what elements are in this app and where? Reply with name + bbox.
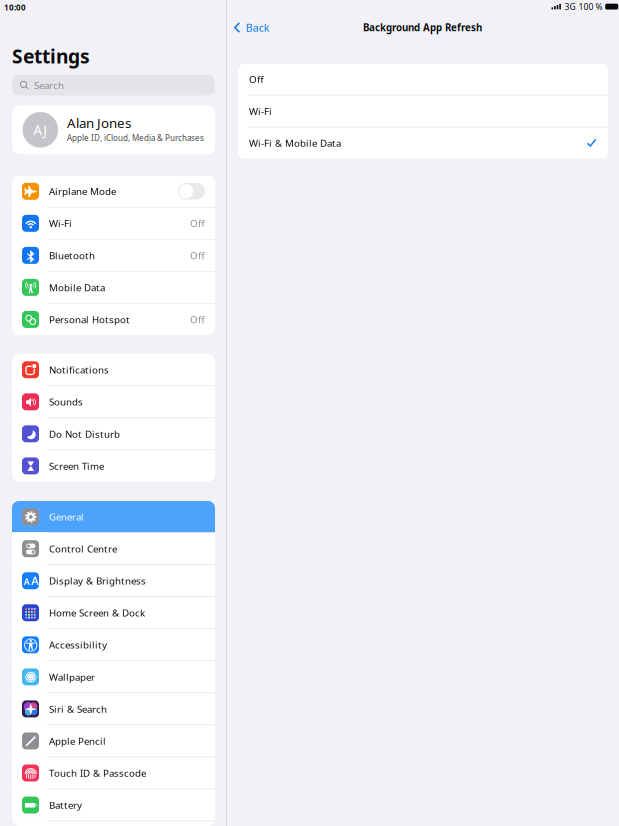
staticText: 10:00 bbox=[4, 2, 26, 13]
staticText: Control Centre bbox=[49, 542, 117, 555]
staticText: Settings bbox=[12, 43, 90, 69]
button[interactable]: Do Not Disturb bbox=[12, 418, 215, 449]
staticText: Off bbox=[249, 73, 264, 86]
button[interactable]: Screen Time bbox=[12, 450, 215, 481]
button[interactable]: Control Centre bbox=[12, 533, 215, 564]
button[interactable]: AJ bbox=[12, 105, 215, 154]
staticText: Do Not Disturb bbox=[49, 427, 120, 440]
staticText: Battery bbox=[49, 798, 82, 812]
staticText: Apple Pencil bbox=[49, 734, 106, 748]
button[interactable]: Battery bbox=[12, 789, 215, 821]
staticText: General bbox=[49, 510, 84, 523]
button[interactable]: Notifications bbox=[12, 354, 215, 385]
button[interactable]: Back bbox=[226, 15, 279, 39]
staticText: Home Screen & Dock bbox=[49, 606, 145, 619]
staticText: AJ bbox=[33, 120, 47, 139]
staticText: Wi-Fi bbox=[49, 217, 72, 230]
button[interactable]: Wi-Fi bbox=[12, 208, 215, 239]
button[interactable]: Home Screen & Dock bbox=[12, 597, 215, 628]
staticText: Apple ID, iCloud, Media & Purchases bbox=[67, 132, 204, 143]
staticText: Screen Time bbox=[49, 459, 104, 473]
button[interactable]: Sounds bbox=[12, 386, 215, 417]
button[interactable]: Personal Hotspot bbox=[12, 304, 215, 335]
button[interactable]: Mobile Data bbox=[12, 272, 215, 303]
staticText: Personal Hotspot bbox=[49, 313, 130, 326]
staticText: Notifications bbox=[49, 363, 109, 376]
staticText: Wallpaper bbox=[49, 670, 95, 683]
staticText: Airplane Mode bbox=[49, 185, 116, 198]
staticText: 100 % bbox=[579, 1, 603, 12]
button[interactable]: Off bbox=[238, 64, 608, 95]
staticText: Siri & Search bbox=[49, 702, 107, 716]
button[interactable]: Airplane Mode bbox=[12, 176, 215, 207]
button[interactable]: Apple Pencil bbox=[12, 725, 215, 757]
button[interactable]: Wi-Fi bbox=[238, 95, 608, 127]
staticText: Display & Brightness bbox=[49, 574, 146, 587]
staticText: Accessibility bbox=[49, 638, 107, 651]
staticText: Wi-Fi bbox=[249, 104, 272, 118]
staticText: Bluetooth bbox=[49, 249, 95, 262]
button[interactable]: Wallpaper bbox=[12, 661, 215, 692]
button[interactable]: Touch ID & Passcode bbox=[12, 757, 215, 789]
staticText: Off bbox=[190, 313, 205, 326]
button[interactable]: Privacy bbox=[12, 821, 215, 826]
staticText: Touch ID & Passcode bbox=[49, 766, 146, 780]
staticText: 3G bbox=[564, 1, 575, 12]
staticText: Wi-Fi & Mobile Data bbox=[249, 136, 341, 150]
staticText: Background App Refresh bbox=[363, 21, 482, 34]
staticText: Sounds bbox=[49, 395, 83, 408]
button[interactable]: Display & Brightness bbox=[12, 565, 215, 596]
button[interactable]: General bbox=[12, 501, 215, 532]
staticText: Off bbox=[190, 249, 205, 262]
staticText: Off bbox=[190, 217, 205, 230]
button[interactable]: Bluetooth bbox=[12, 240, 215, 271]
staticText: Mobile Data bbox=[49, 281, 105, 294]
button[interactable]: Wi-Fi & Mobile Data bbox=[238, 127, 608, 159]
staticText: Alan Jones bbox=[67, 114, 131, 132]
staticText: Back bbox=[246, 20, 270, 35]
staticText: Search bbox=[34, 78, 64, 92]
button[interactable]: Accessibility bbox=[12, 629, 215, 660]
button[interactable]: Siri & Search bbox=[12, 693, 215, 724]
